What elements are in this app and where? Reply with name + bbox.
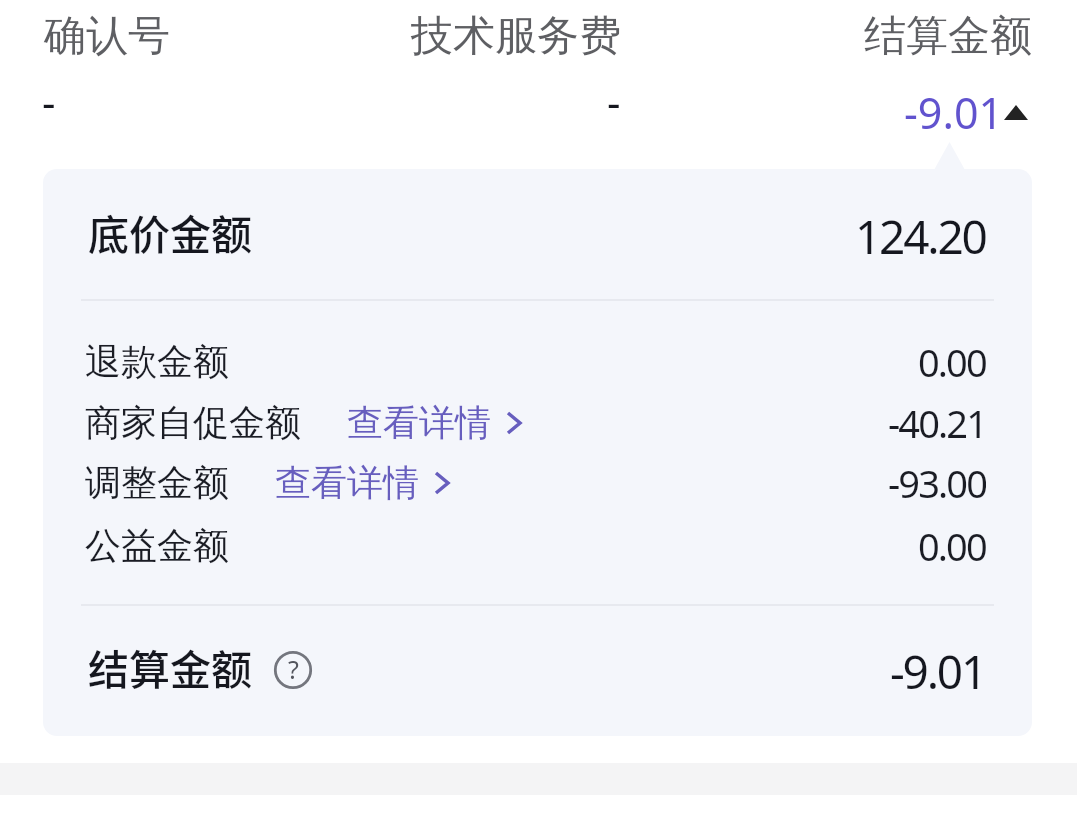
staticText: 0.00 xyxy=(918,520,986,570)
staticText: 公益金额 xyxy=(85,523,229,568)
staticText: 商家自促金额 xyxy=(85,400,301,445)
staticText: 确认号 xyxy=(44,10,170,63)
staticText: 结算金额 xyxy=(88,637,252,689)
staticText: ? xyxy=(288,652,299,686)
button[interactable]: 结算金额说明 xyxy=(268,645,318,695)
staticText: 124.20 xyxy=(855,205,986,257)
staticText: 结算金额 xyxy=(864,10,1032,63)
staticText: - xyxy=(42,73,56,130)
staticText: -9.01 xyxy=(890,640,986,692)
staticText: -93.00 xyxy=(888,457,986,507)
staticText: -40.21 xyxy=(888,397,986,447)
button[interactable]: 查看详情 xyxy=(275,460,450,505)
button[interactable]: 查看详情 xyxy=(347,400,522,445)
staticText: 0.00 xyxy=(918,336,986,386)
staticText: -9.01 xyxy=(904,83,1004,141)
staticText: 查看详情 xyxy=(347,400,491,445)
staticText: - xyxy=(607,73,621,130)
button[interactable]: 结算金额 -9.01, collapse details xyxy=(896,80,1036,138)
staticText: 底价金额 xyxy=(88,202,252,254)
staticText: 技术服务费 xyxy=(411,10,621,63)
staticText: 调整金额 xyxy=(85,460,229,505)
staticText: 退款金额 xyxy=(85,339,229,384)
staticText: 查看详情 xyxy=(275,460,419,505)
